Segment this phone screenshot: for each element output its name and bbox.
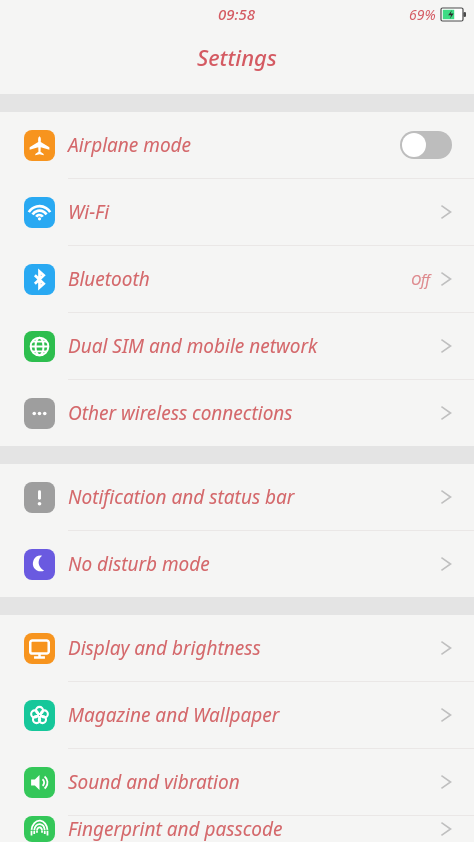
staticText: 69%	[409, 5, 436, 24]
staticText: Magazine and Wallpaper	[68, 702, 440, 728]
staticText: Sound and vibration	[68, 769, 440, 795]
staticText: Airplane mode	[68, 132, 400, 158]
button[interactable]: Wi-Fi	[0, 179, 474, 245]
staticText: No disturb mode	[68, 551, 440, 577]
staticText: Dual SIM and mobile network	[68, 333, 440, 359]
button[interactable]: Magazine and Wallpaper	[0, 682, 474, 748]
staticText: Bluetooth	[68, 266, 411, 292]
staticText: Off	[411, 270, 431, 289]
button[interactable]: Dual SIM and mobile network	[0, 313, 474, 379]
button[interactable]: Airplane mode toggle	[400, 131, 452, 159]
button[interactable]: Display and brightness	[0, 615, 474, 681]
staticText: Other wireless connections	[68, 400, 440, 426]
button[interactable]: Other wireless connections	[0, 380, 474, 446]
staticText: Wi-Fi	[68, 199, 440, 225]
staticText: Notification and status bar	[68, 484, 440, 510]
staticText: Display and brightness	[68, 635, 440, 661]
staticText: Settings	[197, 42, 277, 72]
button[interactable]: Fingerprint and passcode	[0, 816, 474, 842]
staticText: Fingerprint and passcode	[68, 816, 440, 842]
button[interactable]: Bluetooth	[0, 246, 474, 312]
button[interactable]: Airplane mode	[0, 112, 474, 178]
button[interactable]: Notification and status bar	[0, 464, 474, 530]
button[interactable]: No disturb mode	[0, 531, 474, 597]
staticText: 09:58	[218, 4, 256, 24]
button[interactable]: Sound and vibration	[0, 749, 474, 815]
